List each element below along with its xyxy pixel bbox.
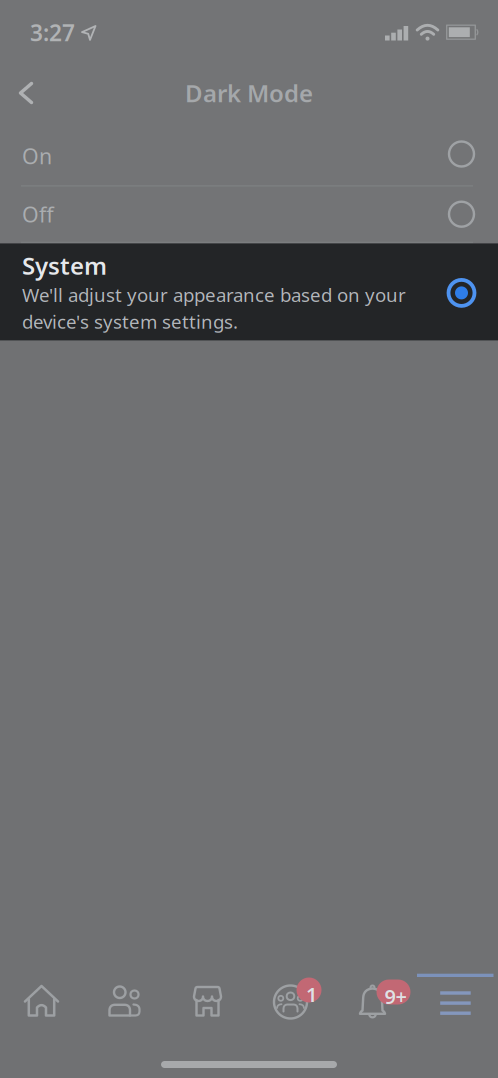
staticText: 9+	[384, 983, 406, 1010]
button[interactable]: Off	[0, 200, 498, 228]
staticText: 3:27	[30, 17, 75, 47]
button[interactable]: Menu	[415, 966, 498, 1038]
button[interactable]: Notifications	[332, 966, 415, 1038]
staticText: Off	[22, 200, 54, 228]
staticText: We'll adjust your appearance based on yo…	[22, 282, 406, 334]
staticText: 1	[306, 981, 317, 1008]
staticText: System	[22, 249, 107, 281]
button[interactable]: System	[0, 243, 498, 340]
button[interactable]: On	[0, 142, 498, 170]
button[interactable]: Back	[0, 74, 34, 112]
button[interactable]: Groups	[249, 966, 332, 1038]
button[interactable]: Home	[0, 966, 83, 1038]
staticText: On	[22, 142, 52, 170]
button[interactable]: Friends	[83, 966, 166, 1038]
button[interactable]: Marketplace	[166, 966, 249, 1038]
staticText: Dark Mode	[185, 77, 313, 109]
